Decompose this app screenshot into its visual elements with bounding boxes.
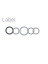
button[interactable]: Second [13, 28, 19, 34]
button[interactable]: Fifth [33, 28, 39, 34]
button[interactable]: First [6, 27, 13, 34]
button[interactable]: Fourth [28, 28, 34, 34]
button[interactable]: Third [19, 27, 29, 35]
staticText: Label [2, 16, 15, 23]
button[interactable]: Label [2, 16, 15, 23]
